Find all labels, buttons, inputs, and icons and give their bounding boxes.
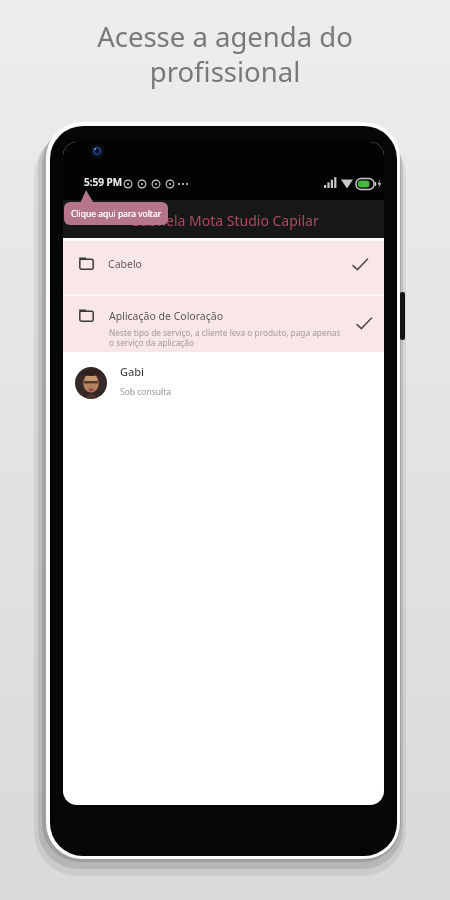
staticText: Acesse a agenda do profissional bbox=[97, 18, 353, 90]
button[interactable]: Cabelo bbox=[63, 241, 384, 294]
staticText: Gabi bbox=[120, 364, 145, 379]
button[interactable]: Gabriela Mota Studio Capilar bbox=[63, 200, 384, 238]
button[interactable]: Clique aqui para voltar bbox=[64, 202, 168, 225]
button[interactable]: Gabi bbox=[63, 352, 384, 410]
staticText: Gabriela Mota Studio Capilar bbox=[130, 211, 319, 230]
staticText: 5:59 PM bbox=[84, 175, 122, 189]
staticText: Clique aqui para voltar bbox=[71, 208, 162, 220]
staticText: Aplicação de Coloração bbox=[109, 309, 223, 323]
staticText: Cabelo bbox=[108, 257, 142, 271]
staticText: Sob consulta bbox=[120, 386, 172, 398]
staticText: Neste tipo de serviço, a cliente leva o … bbox=[109, 327, 341, 349]
button[interactable]: Aplicação de Coloração bbox=[63, 296, 384, 352]
